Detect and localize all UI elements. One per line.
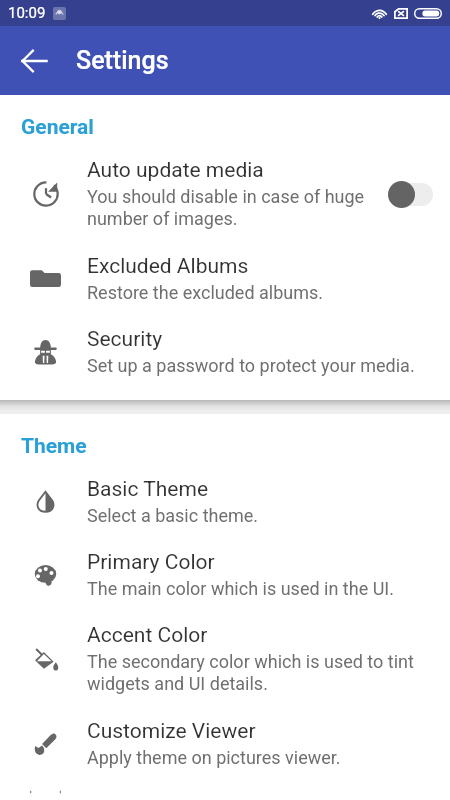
staticText: Primary Color bbox=[87, 550, 215, 575]
staticText: The main color which is used in the UI. bbox=[87, 578, 394, 599]
button[interactable]: Security bbox=[0, 315, 450, 388]
staticText: General bbox=[21, 115, 94, 140]
staticText: Accent Color bbox=[87, 623, 208, 648]
staticText: Basic Theme bbox=[87, 477, 209, 502]
staticText: Security bbox=[87, 327, 163, 352]
staticText: Set up a password to protect your media. bbox=[87, 355, 415, 376]
button[interactable]: Accent Color bbox=[0, 611, 450, 707]
button[interactable]: Toggle auto update media bbox=[388, 179, 438, 209]
button[interactable]: Customize Viewer bbox=[0, 707, 450, 780]
staticText: Select a basic theme. bbox=[87, 505, 259, 526]
staticText: Apply theme on pictures viewer. bbox=[87, 747, 341, 768]
staticText: Restore the excluded albums. bbox=[87, 282, 324, 303]
button[interactable]: Basic Theme bbox=[0, 465, 450, 538]
staticText: Settings bbox=[76, 46, 169, 75]
button[interactable]: Auto update media bbox=[0, 146, 450, 242]
button[interactable]: Excluded Albums bbox=[0, 242, 450, 315]
staticText: Auto update media bbox=[87, 158, 264, 183]
button[interactable]: Back bbox=[9, 36, 59, 86]
staticText: 10:09 bbox=[8, 4, 46, 22]
staticText: Customize Viewer bbox=[87, 719, 256, 744]
button[interactable]: Primary Color bbox=[0, 538, 450, 611]
staticText: The secondary color which is used to tin… bbox=[87, 651, 414, 695]
staticText: Theme bbox=[21, 434, 87, 459]
staticText: Excluded Albums bbox=[87, 254, 249, 279]
staticText: You should disable in case of huge numbe… bbox=[87, 186, 365, 230]
